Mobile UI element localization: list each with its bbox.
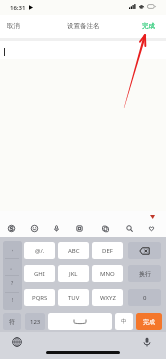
staticText: 完成: [143, 318, 155, 326]
staticText: 取消: [7, 22, 20, 30]
staticText: 123: [30, 318, 41, 326]
button[interactable]: photo: [99, 222, 112, 235]
staticText: 16:31: [10, 4, 26, 12]
button[interactable]: mic: [50, 222, 63, 235]
button[interactable]: 123: [25, 313, 45, 330]
button[interactable]: !: [3, 292, 22, 309]
button[interactable]: 完成: [134, 18, 166, 34]
button[interactable]: JKL: [58, 265, 89, 282]
button[interactable]: GHI: [24, 265, 55, 282]
staticText: DEF: [102, 247, 113, 255]
staticText: JKL: [69, 270, 78, 278]
staticText: 换行: [139, 270, 151, 278]
button[interactable]: 中: [115, 313, 133, 330]
staticText: 中: [121, 318, 127, 325]
staticText: !: [12, 297, 14, 304]
staticText: @/.: [35, 247, 45, 255]
button[interactable]: ?: [3, 275, 22, 292]
staticText: 符: [9, 318, 15, 326]
button[interactable]: 完成: [136, 313, 162, 330]
staticText: 0: [143, 294, 147, 302]
button[interactable]: emoji: [28, 222, 41, 235]
staticText: ,: [12, 246, 14, 253]
button[interactable]: TUV: [58, 289, 89, 306]
button[interactable]: MNO: [92, 265, 123, 282]
button[interactable]: 。: [3, 258, 22, 275]
button[interactable]: Space: [48, 313, 112, 330]
button[interactable]: 取消: [0, 18, 28, 34]
button[interactable]: search: [123, 222, 136, 235]
button[interactable]: 符: [3, 313, 21, 330]
button[interactable]: ABC: [58, 242, 89, 259]
staticText: WXYZ: [100, 294, 116, 302]
staticText: GHI: [34, 270, 45, 278]
button[interactable]: WXYZ: [92, 289, 123, 306]
button[interactable]: frame: [73, 222, 86, 235]
button[interactable]: 0: [128, 289, 161, 306]
button[interactable]: Switch language: [12, 337, 22, 347]
button[interactable]: @/.: [24, 242, 55, 259]
button[interactable]: 换行: [128, 265, 161, 282]
button[interactable]: Voice input: [142, 337, 152, 347]
button[interactable]: Backspace: [128, 242, 161, 259]
staticText: PQRS: [32, 294, 48, 302]
button[interactable]: DEF: [92, 242, 123, 259]
staticText: ABC: [68, 247, 80, 255]
staticText: TUV: [68, 294, 80, 302]
staticText: 完成: [142, 22, 155, 30]
staticText: MNO: [100, 270, 115, 278]
staticText: 设置备注名: [67, 22, 100, 30]
button[interactable]: logo: [5, 222, 18, 235]
staticText: 。: [10, 264, 15, 270]
staticText: ?: [11, 280, 14, 287]
button[interactable]: PQRS: [24, 289, 55, 306]
button[interactable]: heart: [145, 222, 158, 235]
